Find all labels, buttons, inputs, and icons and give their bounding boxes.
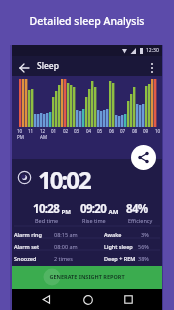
staticText: 08 — [132, 128, 138, 134]
staticText: Snoozed — [14, 255, 37, 262]
staticText: 01 — [51, 128, 57, 134]
button[interactable]: Sleep — [12, 56, 162, 76]
staticText: Deep + REM — [104, 255, 136, 262]
staticText: Sleep — [37, 60, 59, 72]
staticText: 2 times — [54, 255, 73, 262]
staticText: 3% — [141, 231, 149, 238]
staticText: 56% — [138, 243, 149, 250]
staticText: 07 — [120, 128, 126, 134]
staticText: GENERATE INSIGHT REPORT — [12, 273, 162, 280]
staticText: 10 — [155, 128, 161, 134]
staticText: 12:30 — [146, 47, 159, 54]
staticText: Detailed sleep Analysis — [0, 14, 174, 28]
staticText: Light sleep — [104, 243, 133, 250]
staticText: AM — [40, 134, 47, 140]
button[interactable] — [26, 289, 67, 310]
staticText: 10:02 — [38, 163, 90, 196]
button[interactable]: Alarm ring — [14, 229, 149, 240]
staticText: PM — [17, 134, 24, 140]
staticText: 84% — [126, 201, 148, 217]
button[interactable] — [108, 289, 149, 310]
staticText: Efficiency — [128, 217, 153, 224]
staticText: PM — [60, 208, 71, 216]
staticText: 10:28 — [33, 201, 60, 217]
button[interactable]: Alarm set — [14, 241, 149, 252]
staticText: 08:15 am — [54, 231, 78, 238]
button[interactable] — [67, 289, 108, 310]
staticText: 06 — [109, 128, 115, 134]
button[interactable] — [131, 145, 156, 170]
staticText: 10 — [17, 128, 23, 134]
staticText: 09:20 — [80, 201, 107, 217]
staticText: 12 — [40, 128, 46, 134]
staticText: Awake — [104, 231, 122, 238]
staticText: Rise time — [82, 217, 106, 224]
staticText: 03 — [74, 128, 80, 134]
button[interactable]: GENERATE INSIGHT REPORT — [12, 266, 162, 310]
staticText: Bed time — [35, 217, 59, 224]
staticText: 05 — [97, 128, 103, 134]
staticText: 08:00 am — [54, 243, 78, 250]
staticText: 38% — [138, 255, 149, 262]
button[interactable]: Snoozed — [14, 253, 149, 264]
staticText: Alarm ring — [14, 231, 42, 238]
staticText: 11 — [28, 128, 34, 134]
staticText: 02 — [63, 128, 69, 134]
staticText: Alarm set — [14, 243, 40, 250]
staticText: 09 — [143, 128, 149, 134]
staticText: 04 — [86, 128, 92, 134]
staticText: AM — [107, 208, 119, 216]
